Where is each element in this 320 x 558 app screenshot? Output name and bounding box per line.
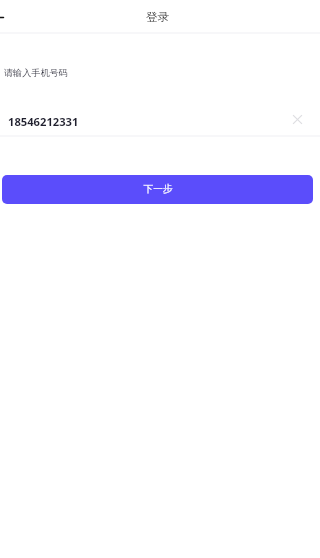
button[interactable]: 下一步 [2,175,313,204]
staticText: 下一步 [143,183,173,195]
staticText: 请输入手机号码 [4,67,68,78]
staticText: 18546212331 [8,114,79,129]
button[interactable]: Clear text [291,113,304,126]
button[interactable]: 18546212331 [0,107,320,135]
button[interactable]: Back [0,5,10,30]
staticText: 登录 [146,10,170,25]
